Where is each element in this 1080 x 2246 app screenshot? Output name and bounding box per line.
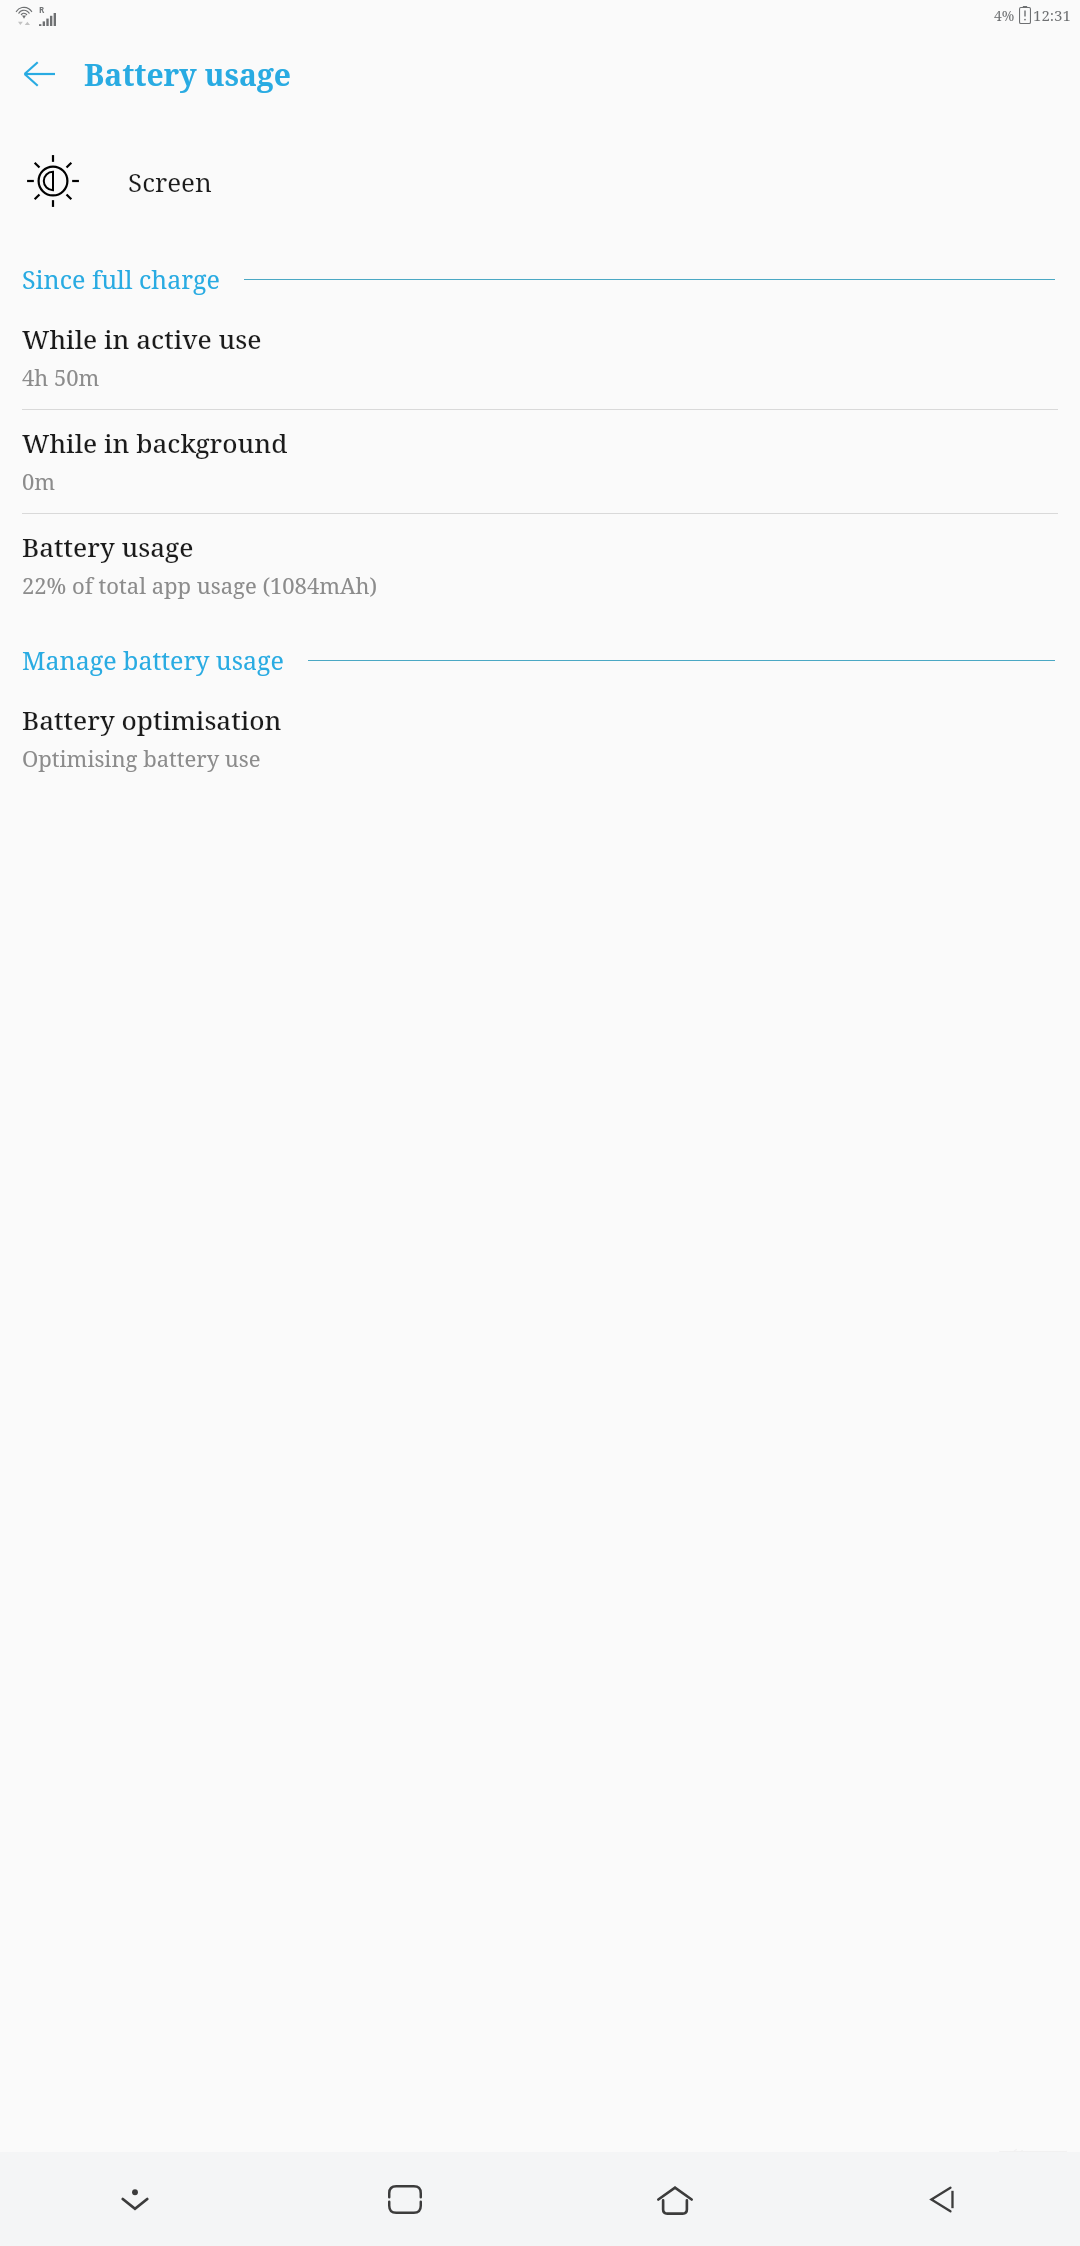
button[interactable]: While in background — [0, 410, 1080, 514]
button[interactable]: Recent apps — [270, 2152, 540, 2246]
staticText: 4% — [994, 6, 1015, 25]
staticText: 4h 50m — [22, 362, 100, 392]
staticText: Manage battery usage — [22, 643, 284, 677]
button[interactable]: While in active use — [0, 306, 1080, 410]
staticText: Battery usage — [84, 54, 291, 95]
staticText: 22% of total app usage (1084mAh) — [22, 570, 378, 600]
staticText: 12:31 — [1033, 5, 1071, 25]
staticText: R — [39, 4, 45, 15]
staticText: Battery usage — [22, 529, 194, 564]
button[interactable]: Battery usage — [0, 514, 1080, 617]
staticText: 0m — [22, 466, 56, 496]
button[interactable]: Back — [810, 2152, 1080, 2246]
button[interactable]: Hide navigation bar — [0, 2152, 270, 2246]
staticText: While in background — [22, 425, 288, 460]
staticText: Screen — [128, 164, 212, 199]
button[interactable]: Back — [8, 43, 70, 105]
button[interactable]: Home — [540, 2152, 810, 2246]
staticText: While in active use — [22, 321, 262, 356]
staticText: Since full charge — [22, 262, 220, 296]
button[interactable]: Battery optimisation — [0, 687, 1080, 790]
staticText: Battery optimisation — [22, 702, 282, 737]
staticText: Optimising battery use — [22, 743, 261, 773]
